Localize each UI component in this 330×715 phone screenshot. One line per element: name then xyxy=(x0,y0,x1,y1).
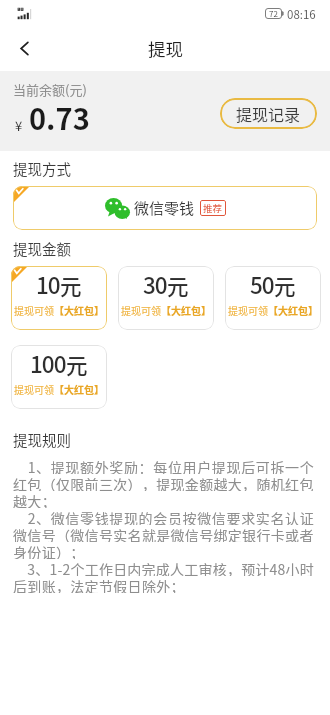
button[interactable]: 微信零钱 xyxy=(13,186,317,230)
staticText: 元 xyxy=(274,270,296,301)
staticText: 100 xyxy=(30,347,66,380)
staticText: 08:16 xyxy=(287,6,316,23)
staticText: 提现可领 xyxy=(228,303,268,317)
staticText: 72 xyxy=(269,8,278,19)
staticText: 提现可领 xyxy=(14,303,54,317)
staticText: 3、1-2个工作日内完成人工审核，预计48小时 xyxy=(13,559,314,576)
staticText: 身份证）； xyxy=(13,542,85,559)
staticText: 提现 xyxy=(148,36,183,61)
staticText: 元 xyxy=(167,270,189,301)
staticText: 后到账，法定节假日除外； xyxy=(13,576,185,593)
staticText: ¥ xyxy=(15,116,23,135)
staticText: 【大红包】 xyxy=(54,382,104,396)
staticText: 元 xyxy=(66,349,88,380)
staticText: 1、提现额外奖励：每位用户提现后可拆一个 xyxy=(13,457,315,474)
staticText: 提现规则 xyxy=(13,429,71,450)
staticText: 提现记录 xyxy=(236,102,301,125)
staticText: 【大红包】 xyxy=(268,303,318,317)
staticText: 30 xyxy=(143,268,167,301)
staticText: 微信零钱 xyxy=(134,197,195,219)
staticText: 提现方式 xyxy=(13,158,71,179)
staticText: 【大红包】 xyxy=(161,303,211,317)
button[interactable]: 50 xyxy=(225,266,321,330)
button[interactable]: 10 xyxy=(11,266,107,330)
staticText: 推荐 xyxy=(203,201,223,215)
staticText: 元 xyxy=(60,270,82,301)
staticText: 2、微信零钱提现的会员按微信要求实名认证 xyxy=(13,508,315,525)
button[interactable]: 100 xyxy=(11,345,107,409)
staticText: 提现可领 xyxy=(14,382,54,396)
staticText: 红包（仅限前三次），提现金额越大，随机红包 xyxy=(13,474,314,491)
button[interactable]: 30 xyxy=(118,266,214,330)
staticText: 50 xyxy=(250,268,274,301)
button[interactable]: 提现记录 xyxy=(220,98,317,129)
staticText: 【大红包】 xyxy=(54,303,104,317)
staticText: 10 xyxy=(36,268,60,301)
staticText: 当前余额(元) xyxy=(13,80,87,99)
staticText: 微信号（微信号实名就是微信号绑定银行卡或者 xyxy=(13,525,314,542)
staticText: 提现可领 xyxy=(121,303,161,317)
staticText: 越大； xyxy=(13,491,56,508)
staticText: 提现金额 xyxy=(13,238,71,259)
staticText: 0.73 xyxy=(29,96,90,138)
button[interactable]: Back xyxy=(2,26,46,70)
